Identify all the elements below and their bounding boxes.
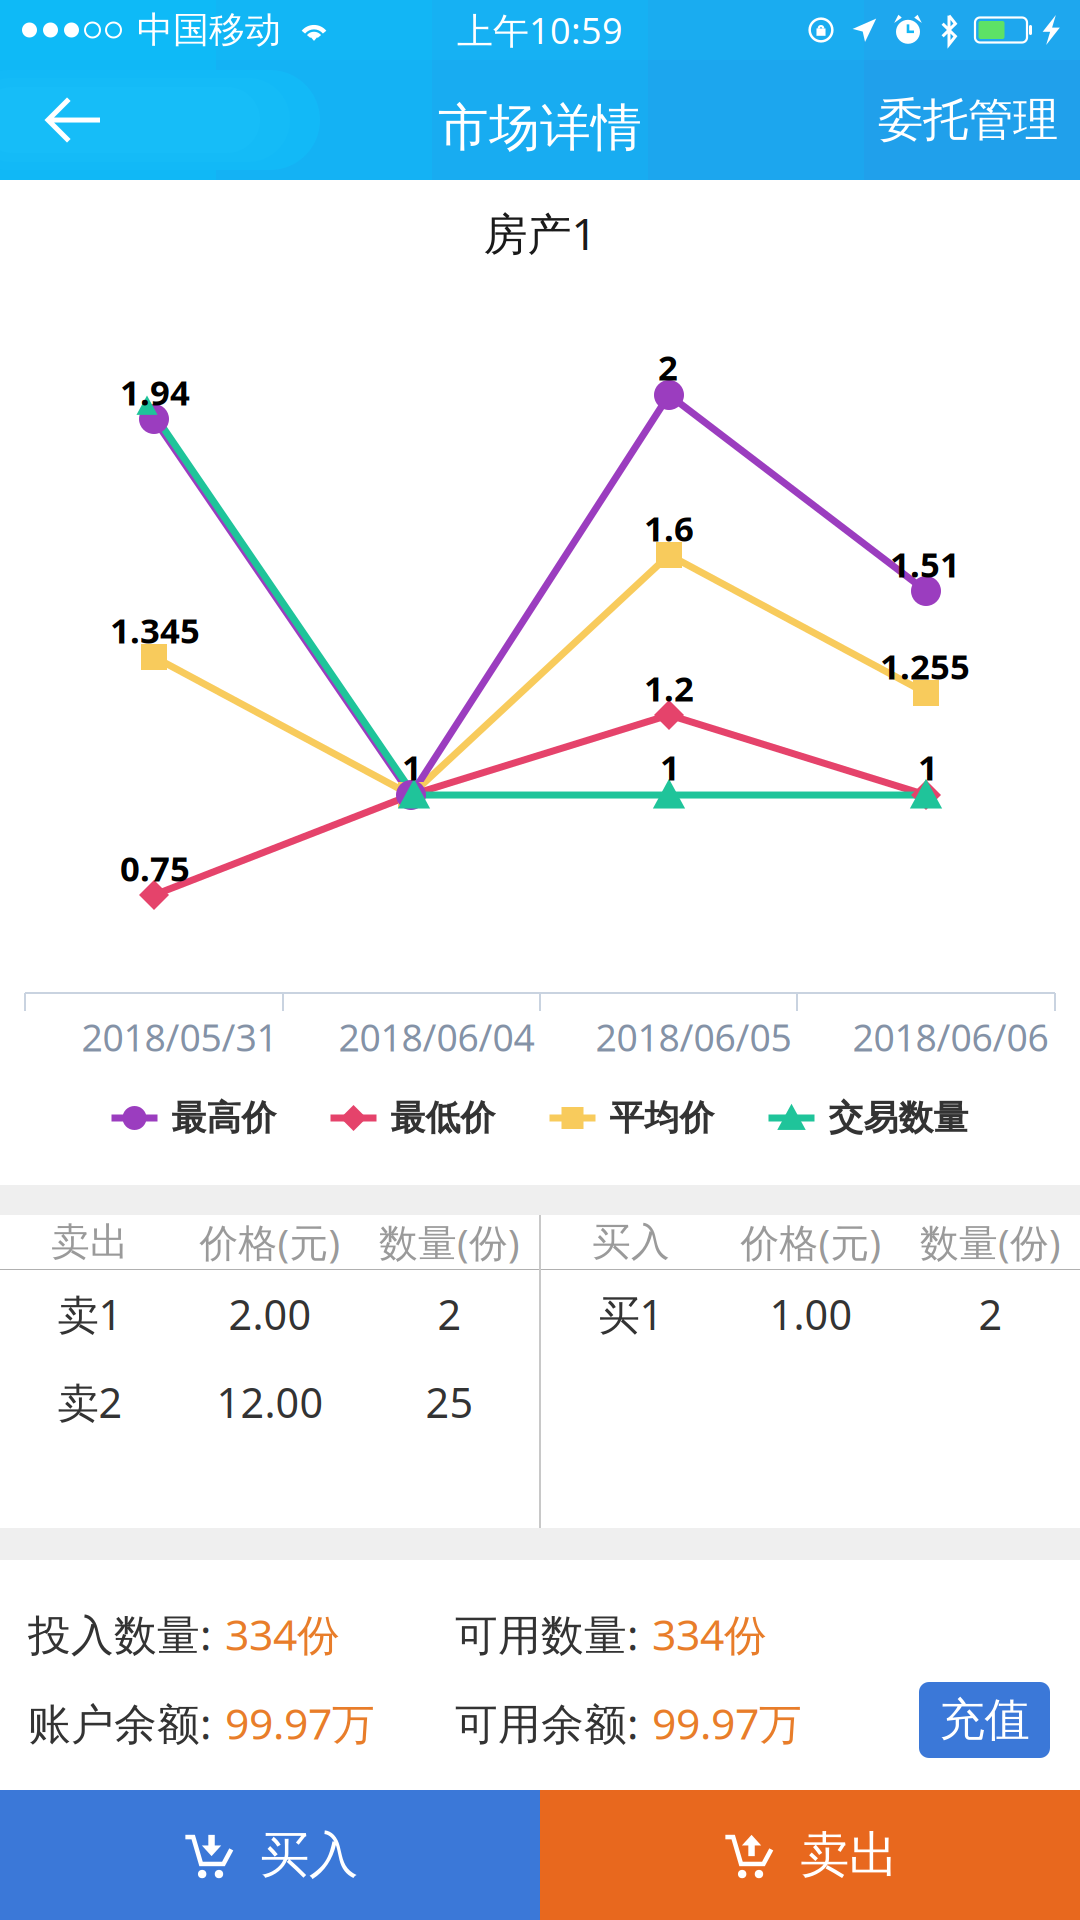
staticText: 2 — [658, 343, 678, 391]
staticText: 1.6 — [644, 504, 694, 552]
staticText: 1 — [402, 743, 422, 791]
staticText: 可用余额: — [455, 1694, 638, 1752]
staticText: 25 — [425, 1374, 473, 1430]
button[interactable]: 买入 — [0, 1790, 540, 1920]
staticText: 账户余额: — [28, 1694, 211, 1752]
staticText: 2018/06/04 — [338, 1012, 534, 1062]
staticText: 2 — [437, 1286, 461, 1342]
staticText: 99.97万 — [652, 1694, 802, 1752]
staticText: 卖出 — [800, 1824, 898, 1886]
staticText: 1.345 — [110, 606, 200, 654]
button[interactable]: 卖出 — [540, 1790, 1080, 1920]
staticText: 卖1 — [57, 1286, 122, 1342]
staticText: 投入数量: — [28, 1605, 211, 1663]
staticText: 数量(份) — [379, 1216, 520, 1268]
staticText: 交易数量 — [828, 1096, 968, 1140]
staticText: 1.00 — [769, 1286, 852, 1342]
staticText: 卖出 — [51, 1218, 129, 1266]
staticText: 1 — [660, 743, 680, 791]
staticText: 0.75 — [120, 844, 190, 892]
staticText: 最高价 — [171, 1096, 276, 1140]
staticText: 1.255 — [880, 642, 970, 690]
staticText: 2 — [978, 1286, 1002, 1342]
staticText: 价格(元) — [740, 1216, 881, 1268]
staticText: 2018/05/31 — [81, 1012, 277, 1062]
staticText: 上午10:59 — [457, 5, 623, 54]
staticText: 最低价 — [390, 1096, 495, 1140]
staticText: 买入 — [260, 1824, 358, 1886]
staticText: 1.51 — [890, 540, 960, 588]
staticText: 12.00 — [216, 1374, 323, 1430]
staticText: 买1 — [598, 1286, 663, 1342]
button[interactable]: 委托管理 — [878, 60, 1080, 180]
staticText: 1.94 — [120, 368, 190, 416]
staticText: 买入 — [592, 1218, 670, 1266]
button[interactable]: 充值 — [919, 1682, 1050, 1758]
staticText: 可用数量: — [455, 1605, 638, 1663]
staticText: 平均价 — [609, 1096, 714, 1140]
staticText: 1.2 — [644, 664, 694, 712]
staticText: 价格(元) — [199, 1216, 340, 1268]
staticText: 数量(份) — [920, 1216, 1061, 1268]
staticText: 2.00 — [228, 1286, 311, 1342]
staticText: 334份 — [652, 1605, 767, 1663]
staticText: 2018/06/06 — [852, 1012, 1048, 1062]
staticText: 充值 — [939, 1691, 1029, 1748]
staticText: 卖2 — [57, 1374, 122, 1430]
button[interactable]: 返回 — [0, 60, 150, 180]
staticText: 市场详情 — [438, 96, 642, 160]
staticText: 1 — [918, 743, 938, 791]
staticText: 2018/06/05 — [595, 1012, 791, 1062]
staticText: 房产1 — [483, 203, 596, 263]
staticText: 委托管理 — [878, 91, 1058, 148]
staticText: 334份 — [225, 1605, 340, 1663]
staticText: 中国移动 — [137, 7, 281, 53]
staticText: 99.97万 — [225, 1694, 375, 1752]
